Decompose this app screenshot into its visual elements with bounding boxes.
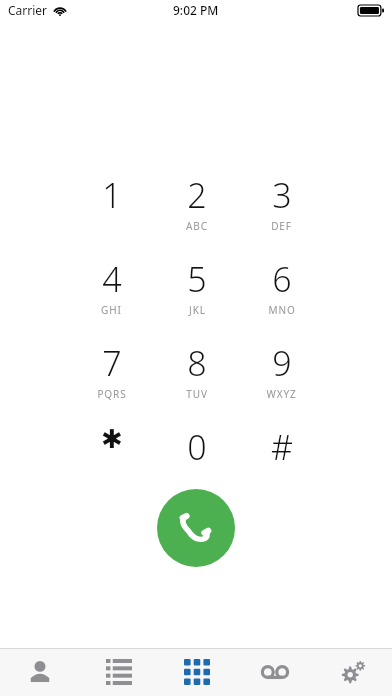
staticText: ✱	[101, 424, 123, 454]
button[interactable]: 2	[154, 170, 239, 254]
button[interactable]: Call	[157, 489, 235, 567]
button[interactable]: #	[239, 422, 324, 506]
staticText: GHI	[101, 303, 122, 317]
button[interactable]: Recents	[79, 648, 158, 696]
staticText: JKL	[189, 303, 206, 317]
staticText: #	[271, 424, 293, 470]
staticText: 9:02 PM	[173, 2, 219, 18]
button[interactable]: Voicemail	[236, 648, 314, 696]
staticText: WXYZ	[266, 387, 297, 401]
staticText: 2	[187, 172, 207, 218]
button[interactable]: 6	[239, 254, 324, 338]
staticText: ABC	[186, 219, 208, 233]
button[interactable]: 8	[154, 338, 239, 422]
button[interactable]: 3	[239, 170, 324, 254]
staticText: 6	[272, 256, 292, 302]
staticText: 5	[187, 256, 207, 302]
button[interactable]: Contacts	[0, 648, 79, 696]
staticText: PQRS	[97, 387, 127, 401]
button[interactable]: ✱	[69, 422, 154, 506]
staticText: DEF	[271, 219, 292, 233]
button[interactable]: Keypad	[158, 648, 236, 696]
staticText: 4	[102, 256, 122, 302]
staticText: TUV	[186, 387, 208, 401]
button[interactable]: 9	[239, 338, 324, 422]
button[interactable]: 7	[69, 338, 154, 422]
button[interactable]: 1	[69, 170, 154, 254]
staticText: Carrier	[8, 2, 48, 18]
staticText: 8	[187, 340, 207, 386]
staticText: 3	[272, 172, 292, 218]
staticText: 7	[102, 340, 122, 386]
button[interactable]: Settings	[314, 648, 392, 696]
button[interactable]: 5	[154, 254, 239, 338]
button[interactable]: 4	[69, 254, 154, 338]
staticText: 9	[272, 340, 292, 386]
staticText: 1	[102, 172, 122, 218]
staticText: MNO	[268, 303, 296, 317]
staticText: 0	[187, 424, 207, 470]
button[interactable]: 0	[154, 422, 239, 506]
